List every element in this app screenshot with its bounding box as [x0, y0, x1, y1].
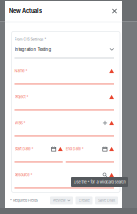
staticText: Integration Testing: [14, 47, 51, 52]
button[interactable]: Save Draft: [95, 196, 118, 204]
staticText: Use the * for a wildcard search: [73, 180, 125, 184]
staticText: Start Date *: [14, 147, 33, 151]
staticText: New Actuals: [9, 8, 42, 14]
staticText: * Required Fields: [10, 198, 38, 203]
staticText: From CIS Settings *: [14, 37, 46, 41]
staticText: WBS *: [14, 121, 25, 125]
button[interactable]: Close: [110, 6, 119, 15]
staticText: Name *: [14, 69, 27, 73]
staticText: End Date *: [66, 147, 84, 151]
staticText: Preview: [52, 198, 65, 203]
staticText: Create: [78, 198, 89, 203]
button[interactable]: Create: [75, 196, 92, 204]
staticText: Resource *: [14, 173, 32, 177]
button[interactable]: Preview: [50, 196, 73, 204]
staticText: Project *: [14, 95, 28, 99]
staticText: Save Draft: [98, 198, 115, 203]
